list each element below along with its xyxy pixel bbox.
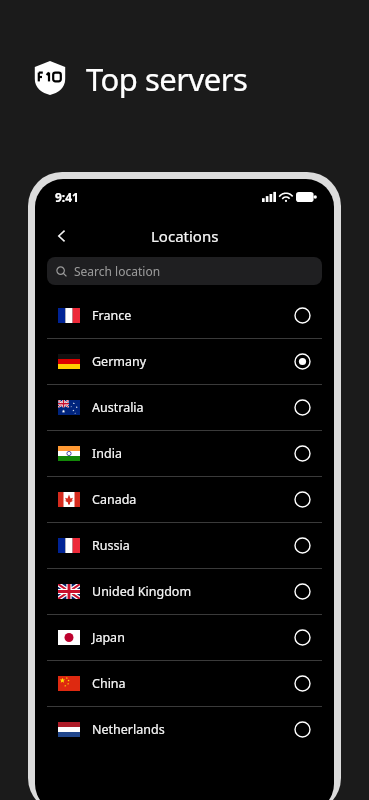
- staticText: Search location: [74, 263, 161, 279]
- staticText: Germany: [92, 353, 294, 370]
- button[interactable]: Australia: [35, 385, 334, 430]
- staticText: Top servers: [86, 58, 248, 100]
- button[interactable]: China: [35, 661, 334, 706]
- staticText: Russia: [92, 537, 294, 554]
- button[interactable]: Netherlands: [35, 707, 334, 752]
- button[interactable]: France: [35, 293, 334, 338]
- staticText: Netherlands: [92, 721, 294, 738]
- staticText: Canada: [92, 491, 294, 508]
- staticText: 9:41: [55, 189, 79, 205]
- button[interactable]: Japan: [35, 615, 334, 660]
- staticText: Japan: [92, 629, 294, 646]
- staticText: India: [92, 445, 294, 462]
- button[interactable]: Germany: [35, 339, 334, 384]
- staticText: China: [92, 675, 294, 692]
- button[interactable]: Canada: [35, 477, 334, 522]
- staticText: Unided Kingdom: [92, 583, 294, 600]
- button[interactable]: Back: [45, 219, 79, 253]
- button[interactable]: Search location: [47, 257, 322, 285]
- button[interactable]: India: [35, 431, 334, 476]
- staticText: Australia: [92, 399, 294, 416]
- staticText: France: [92, 307, 294, 324]
- other: F10 logo: [30, 57, 70, 97]
- button[interactable]: Russia: [35, 523, 334, 568]
- button[interactable]: Unided Kingdom: [35, 569, 334, 614]
- staticText: Locations: [151, 226, 219, 246]
